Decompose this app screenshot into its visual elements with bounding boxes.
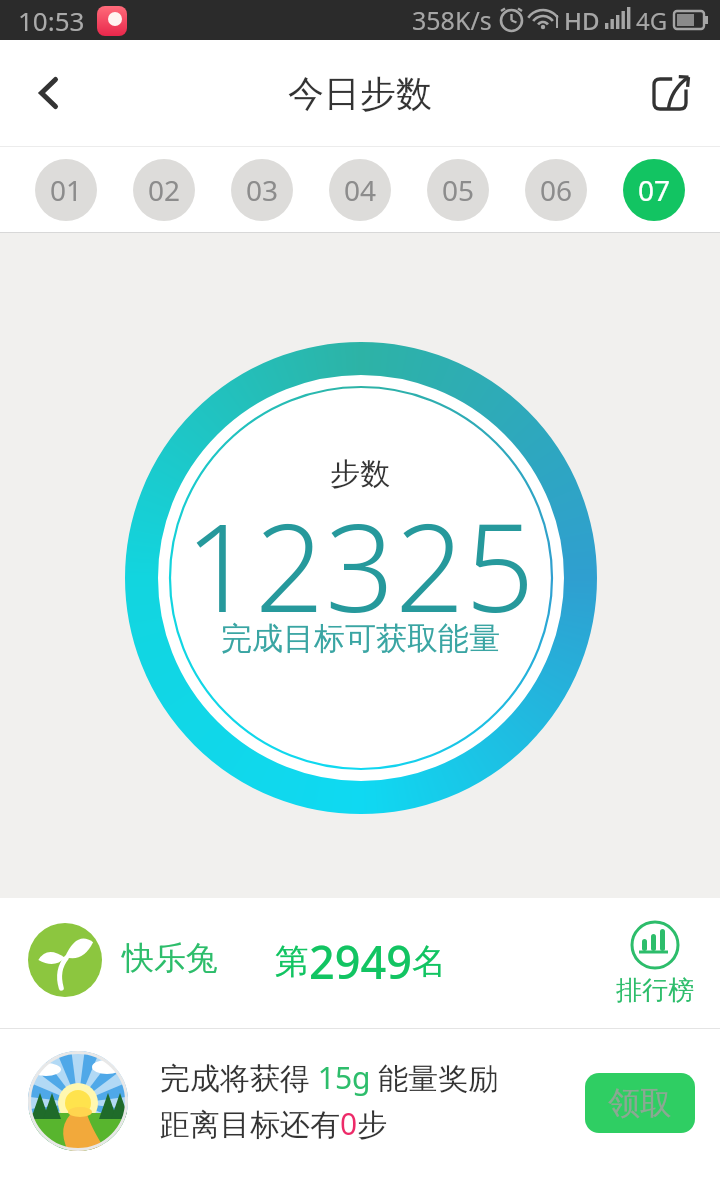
staticText: 距离目标还有0步	[160, 1103, 388, 1144]
staticText: 完成将获得 15g 能量奖励	[160, 1057, 499, 1098]
staticText: 03	[246, 171, 279, 209]
staticText: 06	[540, 171, 573, 209]
staticText: 快乐兔	[122, 938, 218, 978]
staticText: 第	[275, 940, 309, 983]
staticText: 4G	[636, 4, 668, 37]
button[interactable]: 领取	[585, 1073, 695, 1133]
staticText: 今日步数	[288, 71, 432, 116]
staticText: 2949	[309, 931, 412, 992]
staticText: 12325	[185, 483, 536, 648]
button[interactable]	[646, 69, 694, 117]
button[interactable]: 03	[231, 159, 293, 221]
staticText: 名	[412, 940, 446, 983]
button[interactable]: 04	[329, 159, 391, 221]
staticText: 04	[344, 171, 377, 209]
button[interactable]: 05	[427, 159, 489, 221]
staticText: 10:53	[18, 3, 85, 38]
staticText: 02	[148, 171, 181, 209]
staticText: 358K/s	[412, 3, 492, 37]
staticText: 01	[50, 171, 83, 209]
button[interactable]	[24, 69, 72, 117]
staticText: HD	[564, 4, 600, 37]
button[interactable]: 07	[623, 159, 685, 221]
staticText: 05	[442, 171, 475, 209]
staticText: 07	[638, 171, 671, 209]
button[interactable]: 06	[525, 159, 587, 221]
button[interactable]: 01	[35, 159, 97, 221]
button[interactable]: 排行榜	[616, 920, 694, 1007]
staticText: 完成目标可获取能量	[221, 619, 500, 658]
staticText: 步数	[330, 455, 390, 493]
button[interactable]: 02	[133, 159, 195, 221]
staticText: 排行榜	[616, 974, 694, 1007]
button[interactable]	[28, 923, 102, 997]
staticText: 领取	[608, 1083, 672, 1123]
